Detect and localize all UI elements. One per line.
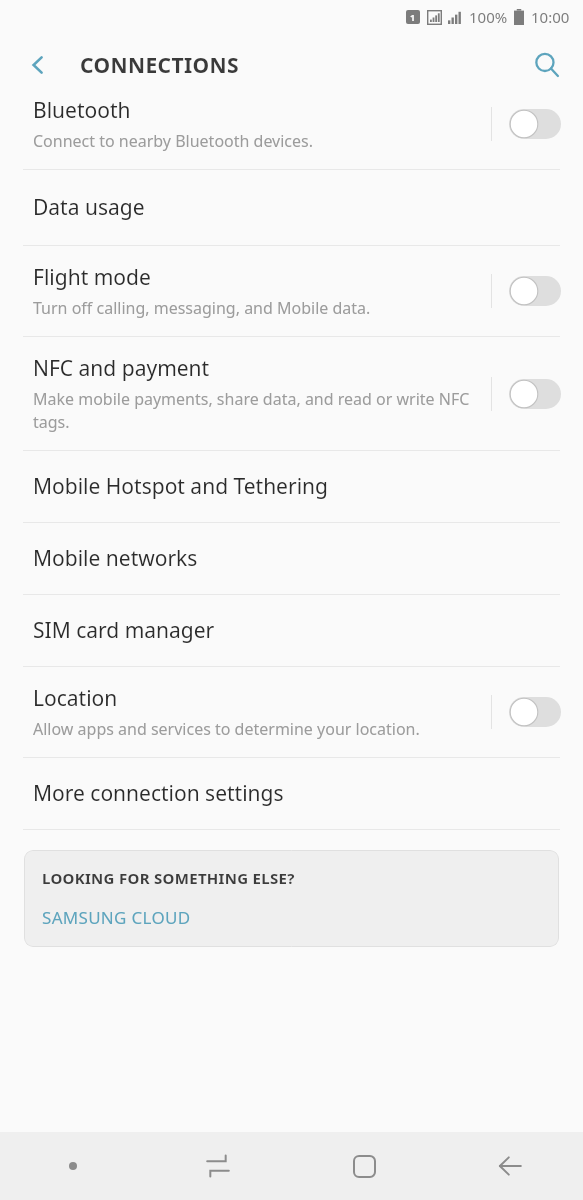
staticText: 10:00 [531, 7, 570, 27]
staticText: 1 [410, 11, 416, 23]
staticText: Turn off calling, messaging, and Mobile … [33, 297, 371, 319]
button[interactable]: Flight mode switch [492, 267, 567, 315]
button[interactable]: Mobile Hotspot and Tethering [0, 451, 583, 522]
button[interactable]: SAMSUNG CLOUD [42, 906, 191, 929]
button[interactable]: Flight mode [0, 246, 583, 336]
staticText: SAMSUNG CLOUD [42, 906, 191, 929]
button[interactable]: NFC and payment switch [492, 370, 567, 418]
staticText: Mobile networks [33, 544, 198, 573]
button[interactable]: More connection settings [0, 758, 583, 829]
button[interactable]: SIM card manager [0, 595, 583, 666]
button[interactable]: Back [16, 43, 60, 87]
staticText: Data usage [33, 193, 145, 222]
staticText: Make mobile payments, share data, and re… [33, 388, 477, 433]
staticText: NFC and payment [33, 354, 210, 383]
staticText: Connect to nearby Bluetooth devices. [33, 130, 314, 152]
staticText: Allow apps and services to determine you… [33, 718, 420, 740]
staticText: CONNECTIONS [80, 51, 240, 80]
button[interactable]: Recents [145, 1132, 291, 1200]
button[interactable]: Home [291, 1132, 437, 1200]
staticText: Bluetooth [33, 96, 131, 125]
staticText: Location [33, 684, 118, 713]
staticText: Mobile Hotspot and Tethering [33, 472, 328, 501]
staticText: More connection settings [33, 779, 284, 808]
button[interactable]: Location [0, 667, 583, 757]
button[interactable]: Search [523, 41, 571, 89]
staticText: SIM card manager [33, 616, 215, 645]
staticText: Flight mode [33, 263, 151, 292]
button[interactable]: NFC and payment [0, 337, 583, 450]
button[interactable]: Data usage [0, 170, 583, 245]
button[interactable]: Bluetooth [0, 96, 583, 169]
button[interactable]: Location switch [492, 688, 567, 736]
button[interactable]: Back [437, 1132, 583, 1200]
button[interactable]: Show keyboard [0, 1132, 145, 1200]
staticText: 100% [469, 7, 508, 27]
button[interactable]: Mobile networks [0, 523, 583, 594]
staticText: LOOKING FOR SOMETHING ELSE? [42, 868, 295, 888]
button[interactable]: Bluetooth switch [492, 100, 567, 148]
